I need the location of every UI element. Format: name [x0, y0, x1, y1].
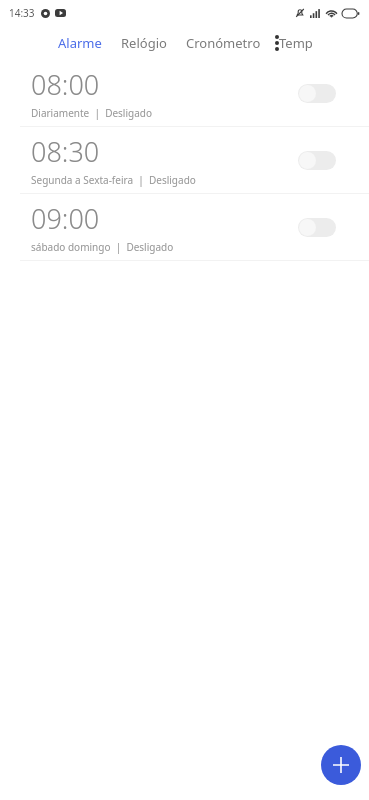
button[interactable]: More options: [266, 26, 288, 60]
staticText: 14:33: [9, 6, 35, 20]
button[interactable]: 08:00: [0, 60, 369, 126]
staticText: 09:00: [31, 200, 100, 237]
button[interactable]: Toggle alarm: [298, 218, 336, 237]
button[interactable]: Relógio: [120, 34, 168, 52]
staticText: Tempo: [279, 34, 313, 52]
staticText: 08:00: [31, 66, 100, 103]
staticText: 08:30: [31, 133, 100, 170]
button[interactable]: Toggle alarm: [298, 84, 336, 103]
button[interactable]: Cronómetro: [185, 34, 262, 52]
button[interactable]: Alarme: [57, 34, 103, 52]
button[interactable]: 08:30: [0, 127, 369, 193]
button[interactable]: Toggle alarm: [298, 151, 336, 170]
staticText: Segunda a Sexta-feira | Desligado: [31, 173, 196, 187]
staticText: Alarme: [58, 34, 102, 52]
staticText: Diariamente | Desligado: [31, 106, 152, 120]
staticText: Relógio: [121, 34, 167, 52]
button[interactable]: 09:00: [0, 194, 369, 260]
staticText: Cronómetro: [186, 34, 261, 52]
staticText: sábado domingo | Desligado: [31, 240, 174, 254]
button[interactable]: Add alarm: [321, 745, 361, 785]
